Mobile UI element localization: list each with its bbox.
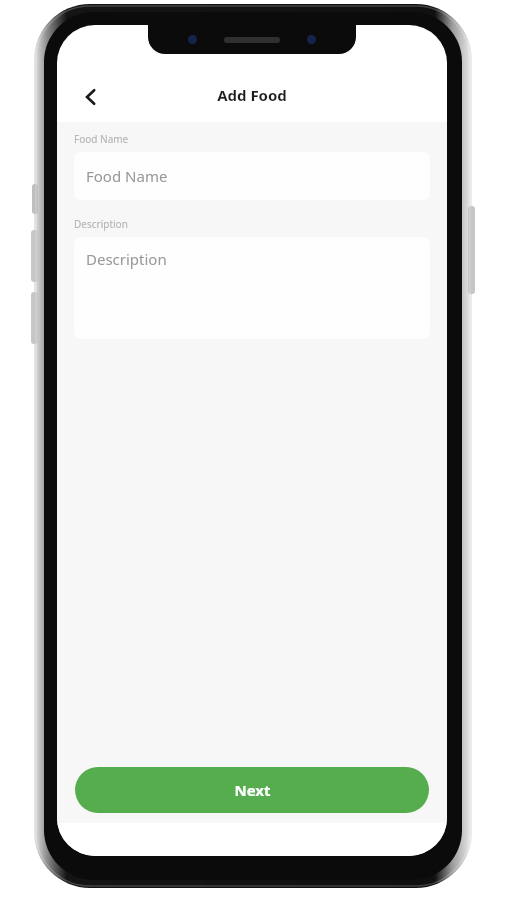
staticText: Next bbox=[234, 780, 271, 800]
button[interactable]: Food Name bbox=[74, 152, 430, 200]
button[interactable]: Description bbox=[74, 237, 430, 339]
staticText: Description bbox=[74, 217, 128, 231]
staticText: Add Food bbox=[217, 85, 287, 105]
button[interactable]: Next bbox=[75, 767, 429, 813]
button[interactable]: Back bbox=[69, 75, 113, 119]
staticText: Food Name bbox=[86, 166, 168, 186]
staticText: Description bbox=[86, 249, 167, 269]
staticText: Food Name bbox=[74, 132, 129, 146]
